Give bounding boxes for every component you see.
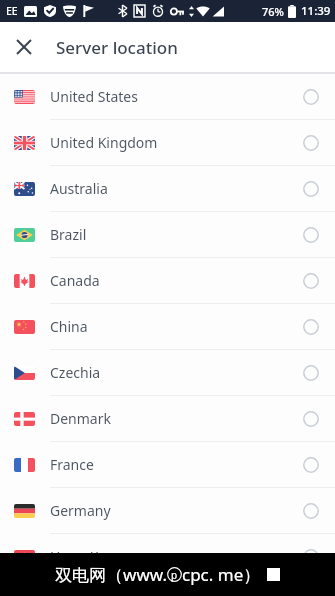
button[interactable]: United States: [0, 74, 335, 119]
button[interactable]: Hong Kong: [0, 534, 335, 579]
button[interactable]: Canada: [0, 258, 335, 303]
button[interactable]: Germany: [0, 488, 335, 533]
staticText: Brazil: [50, 225, 287, 244]
staticText: 76%: [262, 4, 284, 19]
staticText: EE: [6, 4, 18, 18]
staticText: China: [50, 317, 287, 336]
staticText: Australia: [50, 179, 287, 198]
staticText: United Kingdom: [50, 133, 287, 152]
button[interactable]: Brazil: [0, 212, 335, 257]
staticText: Denmark: [50, 409, 287, 428]
staticText: 11:39: [301, 3, 331, 19]
staticText: cpc. me）: [182, 563, 261, 586]
staticText: France: [50, 455, 287, 474]
button[interactable]: China: [0, 304, 335, 349]
staticText: Czechia: [50, 363, 287, 382]
button[interactable]: Czechia: [0, 350, 335, 395]
button[interactable]: Denmark: [0, 396, 335, 441]
staticText: Canada: [50, 271, 287, 290]
button[interactable]: United Kingdom: [0, 120, 335, 165]
staticText: Hong Kong: [50, 547, 287, 566]
button[interactable]: Australia: [0, 166, 335, 211]
button[interactable]: Close: [10, 33, 38, 61]
staticText: р: [171, 568, 178, 582]
staticText: 双电网（www.: [55, 563, 167, 586]
button[interactable]: France: [0, 442, 335, 487]
staticText: Server location: [56, 36, 178, 59]
staticText: Germany: [50, 501, 287, 520]
staticText: United States: [50, 87, 287, 106]
